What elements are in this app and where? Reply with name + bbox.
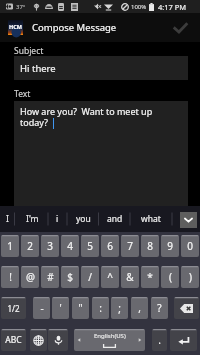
- staticText: &: [126, 270, 134, 284]
- staticText: 7: [127, 239, 133, 253]
- staticText: 8: [147, 239, 153, 253]
- staticText: .: [158, 333, 161, 347]
- button[interactable]: i: [48, 206, 67, 232]
- button[interactable]: 6: [101, 235, 119, 257]
- button[interactable]: ': [52, 297, 69, 319]
- staticText: today?: [20, 116, 48, 128]
- staticText: ': [59, 301, 62, 315]
- staticText: #: [47, 270, 54, 284]
- button[interactable]: *: [141, 266, 159, 288]
- staticText: :: [99, 301, 102, 315]
- button[interactable]: (: [161, 266, 179, 288]
- button[interactable]: 9: [161, 235, 179, 257]
- staticText: How are you? Want to meet up: [20, 105, 153, 117]
- button[interactable]: ^: [101, 266, 119, 288]
- button[interactable]: I: [0, 206, 15, 232]
- staticText: 5: [87, 239, 93, 253]
- staticText: ?: [157, 301, 162, 315]
- staticText: $: [67, 270, 73, 284]
- staticText: 100%: [131, 3, 147, 11]
- staticText: and: [107, 213, 123, 225]
- button[interactable]: 7: [121, 235, 139, 257]
- button[interactable]: $: [61, 266, 79, 288]
- button[interactable]: @: [21, 266, 39, 288]
- button[interactable]: ": [72, 297, 89, 319]
- staticText: 1: [7, 239, 13, 253]
- staticText: ;: [118, 301, 121, 315]
- button[interactable]: ,: [131, 297, 148, 319]
- staticText: ,: [138, 301, 141, 315]
- staticText: /: [88, 270, 92, 284]
- button[interactable]: #: [41, 266, 59, 288]
- staticText: i: [56, 213, 59, 225]
- staticText: I'm: [26, 213, 39, 225]
- staticText: Compose Message: [32, 21, 117, 34]
- button[interactable]: Voice input: [48, 329, 68, 351]
- staticText: 6: [107, 239, 113, 253]
- staticText: *: [147, 270, 153, 284]
- staticText: 3: [47, 239, 53, 253]
- staticText: 4: [67, 239, 73, 253]
- button[interactable]: 0: [181, 235, 199, 257]
- button[interactable]: ): [181, 266, 199, 288]
- button[interactable]: How are you? Want to meet up: [14, 101, 188, 206]
- staticText: 1/2: [7, 303, 20, 314]
- button[interactable]: 4: [61, 235, 79, 257]
- staticText: !: [9, 270, 12, 284]
- staticText: ": [78, 301, 83, 315]
- staticText: @: [26, 270, 35, 284]
- button[interactable]: Change keyboard language: [30, 329, 47, 351]
- button[interactable]: Space: [74, 329, 145, 351]
- staticText: HCM: [9, 23, 22, 30]
- button[interactable]: Backspace: [174, 297, 199, 319]
- button[interactable]: Hi there: [14, 56, 188, 80]
- button[interactable]: ;: [111, 297, 128, 319]
- button[interactable]: 8: [141, 235, 159, 257]
- staticText: -: [40, 301, 44, 315]
- staticText: ABC: [5, 334, 22, 346]
- staticText: 2: [27, 239, 33, 253]
- button[interactable]: Enter: [170, 329, 197, 351]
- staticText: 4:17 PM: [158, 2, 187, 12]
- button[interactable]: and: [99, 206, 131, 232]
- button[interactable]: ?: [151, 297, 168, 319]
- button[interactable]: More suggestions: [180, 212, 197, 228]
- button[interactable]: /: [81, 266, 99, 288]
- button[interactable]: I'm: [15, 206, 49, 232]
- button[interactable]: -: [33, 297, 50, 319]
- staticText: 0: [187, 239, 193, 253]
- staticText: Text: [14, 88, 31, 100]
- button[interactable]: 2: [21, 235, 39, 257]
- button[interactable]: 1/2: [1, 297, 26, 319]
- button[interactable]: &: [121, 266, 139, 288]
- staticText: I: [6, 213, 9, 225]
- button[interactable]: !: [1, 266, 19, 288]
- staticText: 9: [167, 239, 173, 253]
- button[interactable]: you: [67, 206, 99, 232]
- button[interactable]: .: [152, 329, 167, 351]
- staticText: Subject: [14, 45, 44, 57]
- staticText: English(US): [94, 332, 126, 340]
- staticText: what: [141, 213, 161, 225]
- button[interactable]: ABC: [1, 329, 26, 351]
- staticText: 37°: [16, 3, 26, 11]
- staticText: ): [189, 270, 192, 284]
- button[interactable]: 5: [81, 235, 99, 257]
- button[interactable]: :: [92, 297, 109, 319]
- staticText: ^: [107, 270, 113, 284]
- button[interactable]: what: [130, 206, 172, 232]
- button[interactable]: Send message: [168, 20, 192, 36]
- button[interactable]: 3: [41, 235, 59, 257]
- staticText: (: [169, 270, 172, 284]
- staticText: Hi there: [20, 62, 56, 75]
- staticText: you: [76, 213, 91, 225]
- button[interactable]: 1: [1, 235, 19, 257]
